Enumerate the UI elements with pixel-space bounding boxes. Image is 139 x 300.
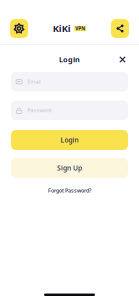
button[interactable]: Sign Up: [11, 158, 128, 178]
button[interactable]: Close: [117, 54, 128, 65]
button[interactable]: Forgot Password?: [11, 185, 128, 196]
staticText: KiKi: [53, 22, 71, 35]
button[interactable]: Settings: [10, 19, 28, 38]
button[interactable]: Login: [11, 130, 128, 150]
staticText: Login: [59, 54, 80, 64]
staticText: Login: [60, 135, 78, 145]
button[interactable]: Share: [111, 19, 129, 38]
staticText: VPN: [75, 25, 85, 32]
staticText: Sign Up: [57, 163, 82, 173]
staticText: Email: [27, 78, 40, 85]
staticText: Forgot Password?: [48, 187, 91, 194]
staticText: Password: [27, 107, 51, 114]
